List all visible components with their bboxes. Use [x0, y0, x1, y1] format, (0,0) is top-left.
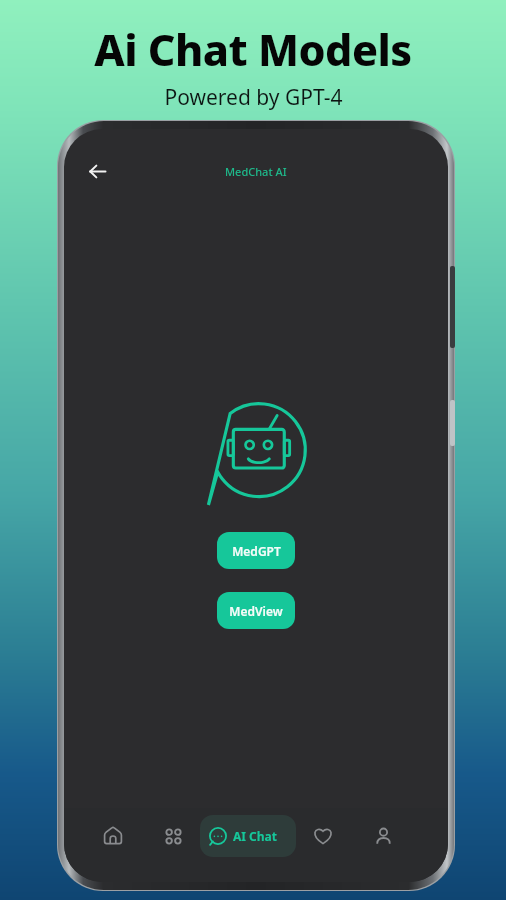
button[interactable]: Profile: [360, 814, 406, 858]
button[interactable]: Favourites: [300, 814, 346, 858]
button[interactable]: Categories: [150, 814, 196, 858]
button[interactable]: AI Chat: [200, 815, 296, 857]
staticText: MedChat AI: [225, 164, 287, 179]
staticText: Powered by GPT-4: [164, 83, 343, 112]
button[interactable]: Home: [90, 814, 136, 858]
staticText: Ai Chat Models: [94, 20, 412, 79]
button[interactable]: Back: [78, 152, 116, 190]
button[interactable]: MedGPT: [217, 532, 295, 569]
staticText: MedGPT: [232, 543, 281, 559]
button[interactable]: MedView: [217, 592, 295, 629]
staticText: AI Chat: [233, 828, 277, 844]
staticText: MedView: [229, 603, 283, 619]
